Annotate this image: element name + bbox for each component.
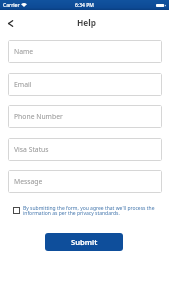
staticText: By submitting the form, you agree that w… bbox=[23, 205, 155, 217]
staticText: Name bbox=[14, 47, 34, 56]
button[interactable]: Email bbox=[8, 73, 162, 96]
staticText: 6:34 PM bbox=[75, 2, 94, 9]
staticText: Message bbox=[14, 177, 43, 186]
staticText: Email bbox=[14, 80, 32, 89]
button[interactable]: Back bbox=[2, 13, 18, 33]
button[interactable]: Phone Number bbox=[8, 105, 162, 128]
button[interactable]: By submitting the form, you agree that w… bbox=[13, 205, 155, 217]
staticText: Submit bbox=[71, 237, 98, 247]
staticText: Carrier bbox=[3, 2, 20, 9]
staticText: Help bbox=[77, 17, 97, 28]
button[interactable]: Name bbox=[8, 40, 162, 63]
staticText: Phone Number bbox=[14, 112, 63, 121]
button[interactable]: Message bbox=[8, 170, 162, 193]
staticText: Visa Status bbox=[14, 145, 49, 154]
button[interactable]: Submit bbox=[45, 233, 123, 251]
button[interactable]: Visa Status bbox=[8, 138, 162, 161]
